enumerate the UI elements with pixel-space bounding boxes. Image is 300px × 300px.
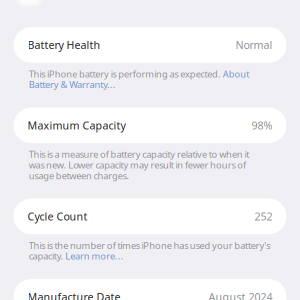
- staticText: This is the number of times iPhone has u…: [29, 239, 270, 251]
- button[interactable]: Learn more...: [65, 250, 123, 262]
- button[interactable]: Battery Health: [13, 27, 286, 63]
- staticText: Normal: [235, 38, 272, 52]
- staticText: 98%: [251, 118, 272, 132]
- staticText: Battery & Warranty...: [29, 78, 116, 91]
- staticText: This is a measure of battery capacity re…: [29, 148, 249, 160]
- staticText: Learn more...: [65, 250, 123, 262]
- button[interactable]: About: [223, 68, 249, 80]
- staticText: About: [223, 68, 249, 80]
- button[interactable]: Cycle Count: [13, 199, 286, 234]
- staticText: capacity.: [29, 250, 65, 262]
- button[interactable]: Manufacture Date: [13, 279, 286, 300]
- staticText: usage between charges.: [29, 169, 129, 182]
- button[interactable]: Maximum Capacity: [13, 108, 286, 143]
- staticText: Cycle Count: [27, 209, 87, 223]
- staticText: Maximum Capacity: [27, 118, 125, 132]
- staticText: Battery Health: [27, 38, 100, 52]
- staticText: This iPhone battery is performing as exp…: [29, 68, 223, 80]
- staticText: 252: [254, 209, 272, 223]
- staticText: was new. Lower capacity may result in fe…: [29, 159, 246, 171]
- staticText: August 2024: [208, 290, 272, 300]
- staticText: Manufacture Date: [27, 290, 120, 300]
